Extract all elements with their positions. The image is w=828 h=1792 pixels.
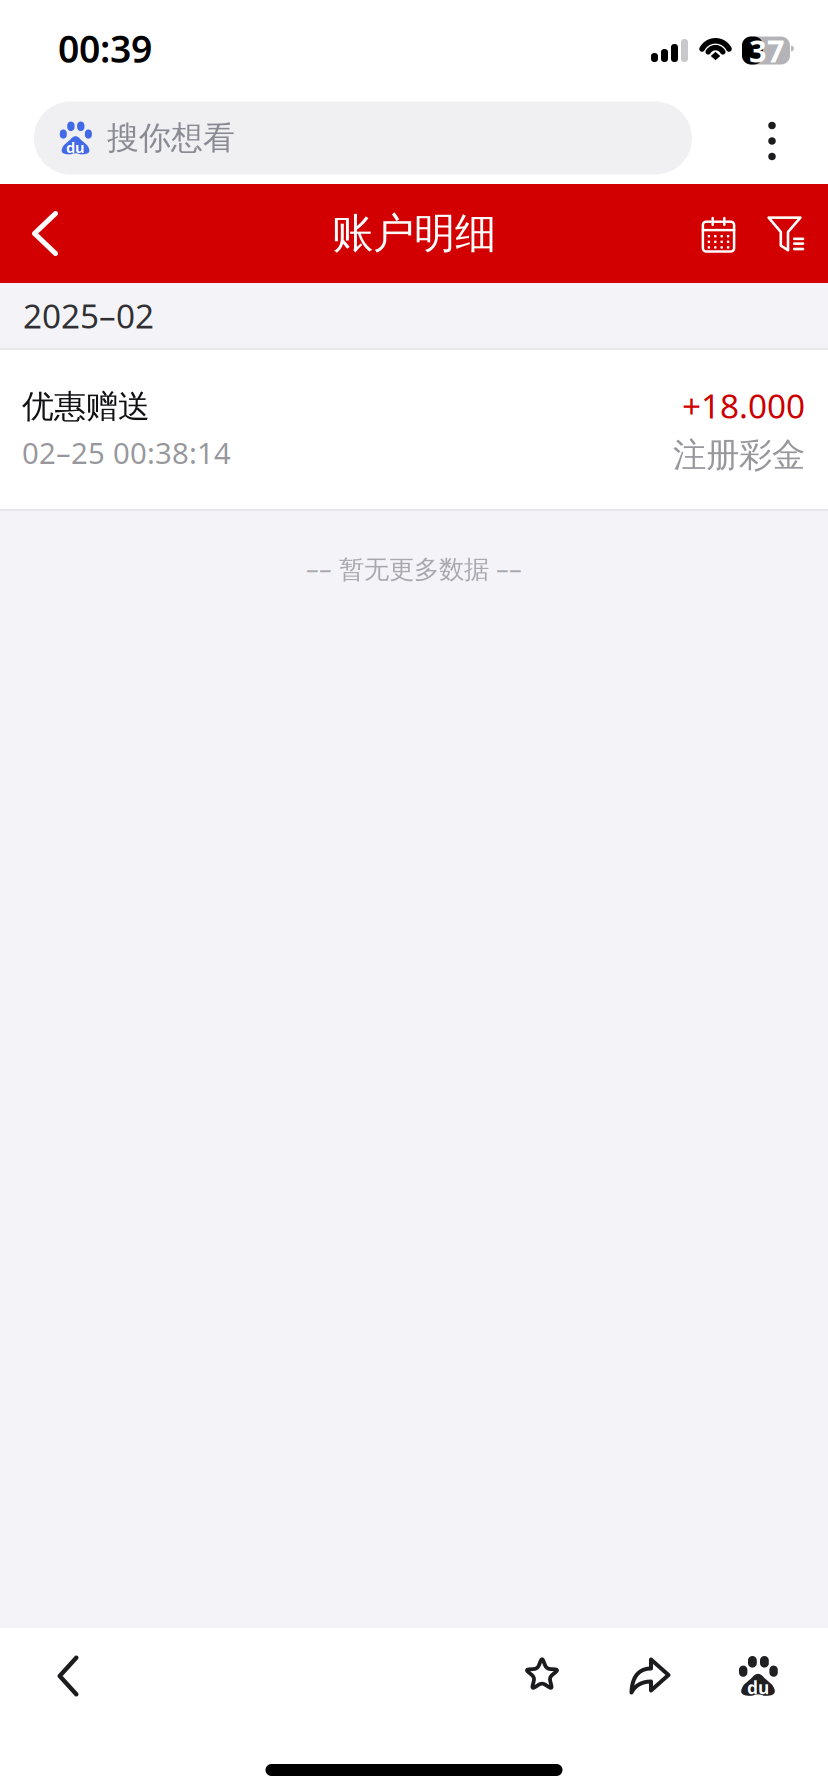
staticText: 搜你想看 (107, 118, 235, 158)
staticText: 00:39 (58, 23, 152, 73)
staticText: 37 (749, 30, 785, 71)
button[interactable]: Back (12, 1624, 124, 1728)
staticText: 优惠赠送 (22, 387, 150, 426)
button[interactable]: Pick date (683, 184, 754, 283)
button[interactable]: Filter (754, 184, 817, 283)
staticText: du (747, 1676, 769, 1699)
staticText: –– 暂无更多数据 –– (306, 552, 522, 585)
staticText: 注册彩金 (673, 435, 805, 476)
staticText: 账户明细 (332, 208, 496, 259)
button[interactable]: Back (0, 184, 90, 283)
staticText: 2025–02 (23, 293, 154, 338)
button[interactable]: du (34, 101, 692, 174)
button[interactable]: Share (596, 1624, 704, 1728)
staticText: du (66, 138, 85, 157)
button[interactable]: 优惠赠送 (0, 350, 828, 509)
staticText: +18.000 (682, 383, 805, 428)
staticText: 02–25 00:38:14 (22, 433, 231, 472)
button[interactable]: Add to favourites (488, 1624, 596, 1728)
button[interactable]: Open Baidu app (704, 1624, 812, 1728)
button[interactable]: More options (724, 92, 820, 184)
